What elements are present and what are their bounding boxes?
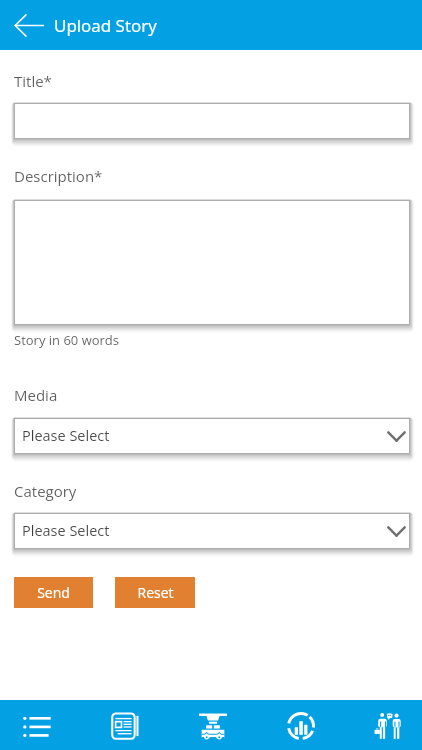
button[interactable]: News: [97, 700, 153, 750]
staticText: Send: [37, 583, 70, 602]
staticText: Media: [14, 385, 58, 405]
button[interactable]: Please Select: [14, 513, 410, 549]
staticText: Description*: [14, 166, 103, 186]
button[interactable]: Please Select: [14, 418, 410, 454]
button[interactable]: Back: [10, 5, 48, 45]
staticText: Reset: [137, 583, 174, 602]
staticText: Please Select: [22, 521, 110, 541]
button[interactable]: Community: [360, 700, 415, 750]
button[interactable]: Send: [14, 577, 93, 608]
button[interactable]: Statistics: [273, 700, 329, 750]
button[interactable]: List: [9, 700, 65, 750]
button[interactable]: [14, 103, 410, 139]
staticText: Category: [14, 481, 77, 501]
button[interactable]: [14, 200, 410, 325]
staticText: Upload Story: [54, 14, 157, 37]
button[interactable]: Reset: [115, 577, 195, 608]
staticText: Story in 60 words: [14, 331, 120, 349]
staticText: Title*: [14, 71, 52, 91]
button[interactable]: Vehicle lift: [185, 700, 241, 750]
staticText: Please Select: [22, 426, 110, 446]
